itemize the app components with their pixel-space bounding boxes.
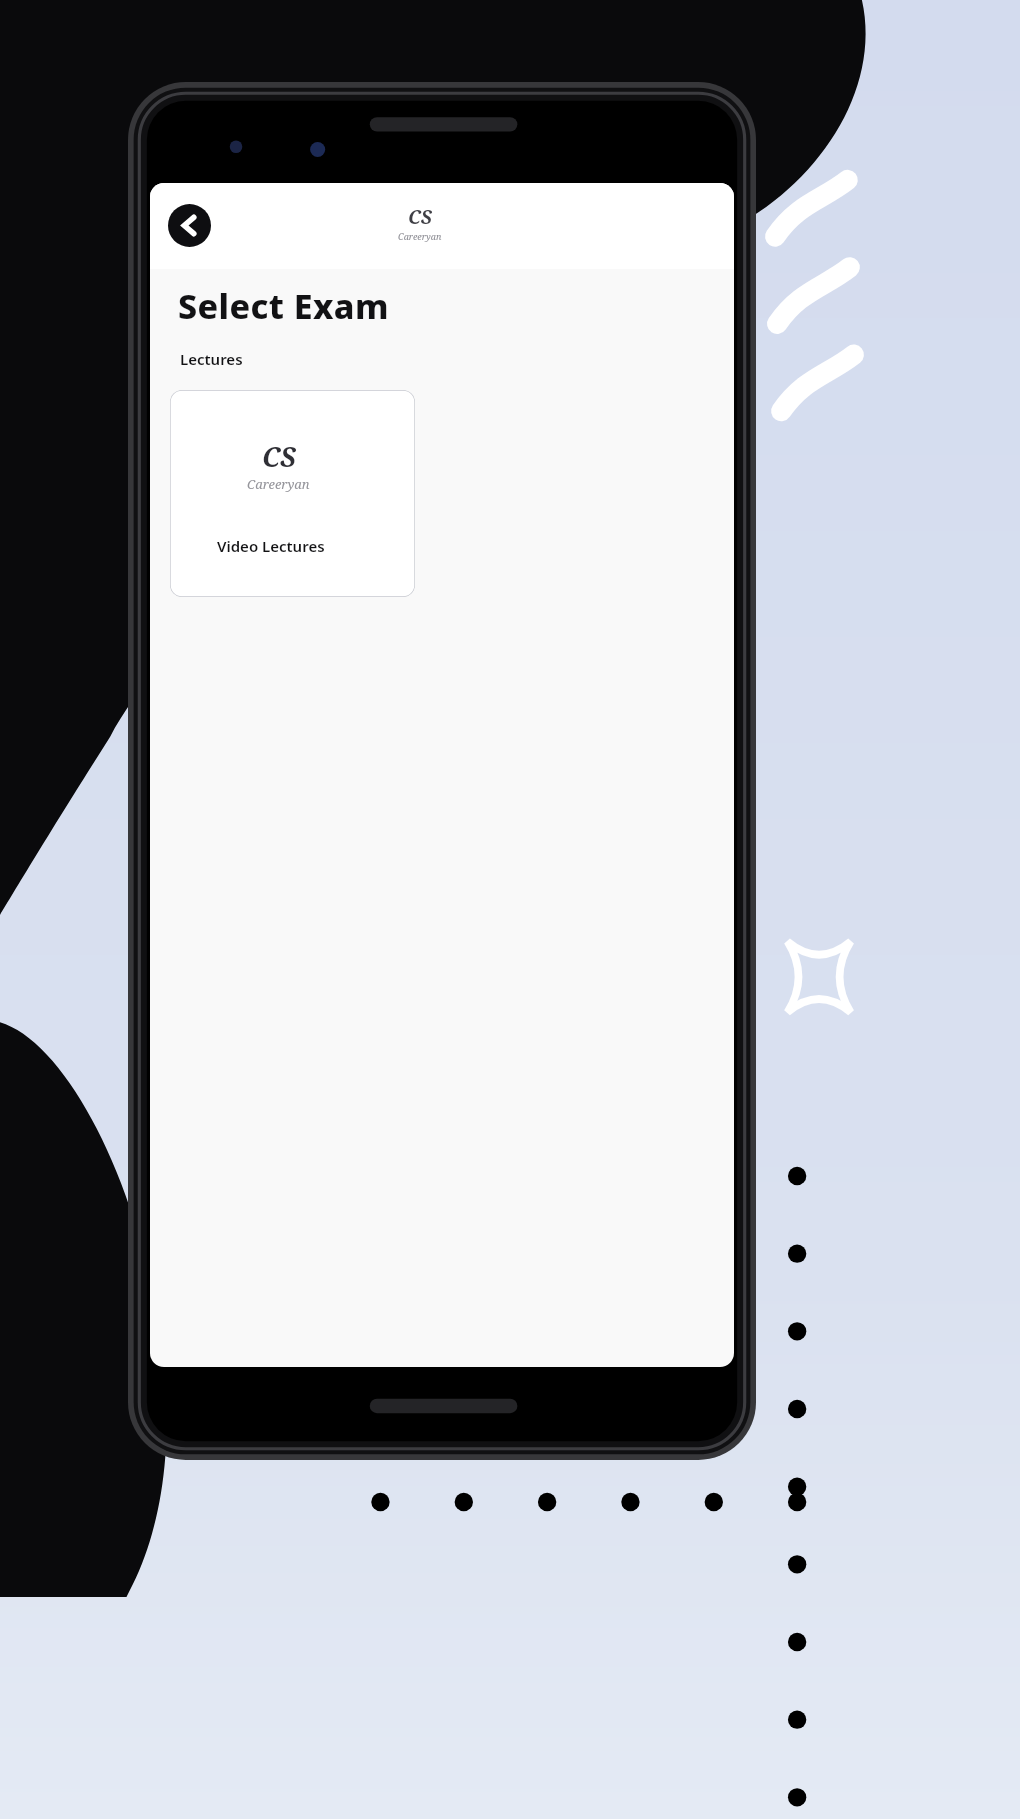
staticText: Video Lectures xyxy=(217,536,325,556)
staticText: Careeryan xyxy=(398,230,442,242)
staticText: Lectures xyxy=(180,349,243,369)
button[interactable]: CS xyxy=(170,390,415,597)
staticText: CS xyxy=(262,438,296,475)
button[interactable]: Back xyxy=(168,204,211,247)
staticText: Select Exam xyxy=(178,283,389,329)
staticText: CS xyxy=(408,204,432,230)
staticText: Careeryan xyxy=(247,475,310,493)
